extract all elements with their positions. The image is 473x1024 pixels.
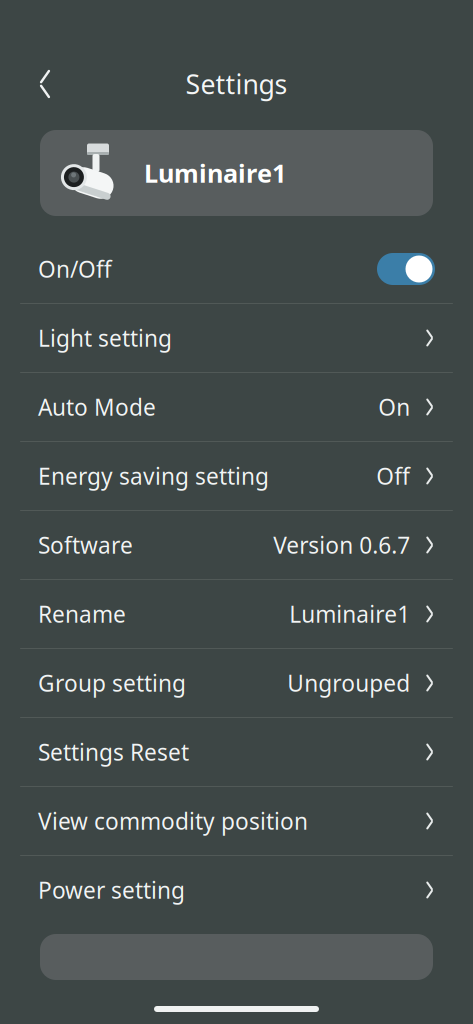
- button[interactable]: Luminaire1: [40, 130, 433, 216]
- button[interactable]: Settings Reset: [20, 718, 453, 786]
- button[interactable]: Rename: [20, 580, 453, 648]
- staticText: Energy saving setting: [38, 461, 269, 491]
- button[interactable]: Light setting: [20, 304, 453, 372]
- staticText: Rename: [38, 599, 126, 629]
- button[interactable]: On/Off: [20, 235, 453, 303]
- staticText: Version 0.6.7: [273, 530, 410, 560]
- staticText: Software: [38, 530, 133, 560]
- button[interactable]: Power setting: [20, 856, 453, 924]
- staticText: Off: [376, 461, 410, 491]
- staticText: On/Off: [38, 254, 112, 284]
- button[interactable]: Auto Mode: [20, 373, 453, 441]
- staticText: Settings Reset: [38, 737, 189, 767]
- staticText: Group setting: [38, 668, 186, 698]
- button[interactable]: Software: [20, 511, 453, 579]
- staticText: Settings: [185, 66, 287, 102]
- staticText: Auto Mode: [38, 392, 156, 422]
- staticText: Light setting: [38, 323, 172, 353]
- staticText: Ungrouped: [287, 668, 410, 698]
- staticText: Luminaire1: [289, 599, 410, 629]
- staticText: Power setting: [38, 875, 185, 905]
- button[interactable]: Energy saving setting: [20, 442, 453, 510]
- button[interactable]: Back: [20, 61, 70, 107]
- staticText: On: [378, 392, 410, 422]
- staticText: View commodity position: [38, 806, 308, 836]
- button[interactable]: Group setting: [20, 649, 453, 717]
- button[interactable]: View commodity position: [20, 787, 453, 855]
- staticText: Luminaire1: [144, 156, 286, 190]
